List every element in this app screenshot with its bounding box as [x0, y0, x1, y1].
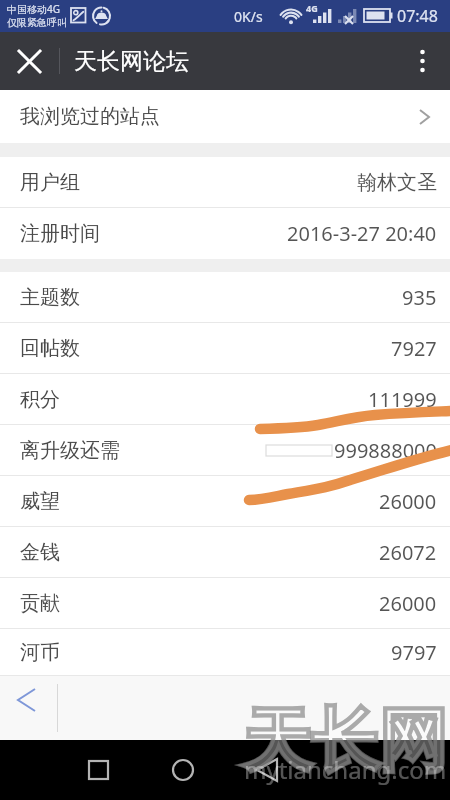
- staticText: 我浏览过的站点: [20, 104, 160, 129]
- button[interactable]: 我浏览过的站点: [0, 90, 450, 143]
- staticText: 0K/s: [234, 7, 263, 26]
- button[interactable]: Home: [153, 740, 213, 800]
- button[interactable]: 贡献: [0, 578, 450, 629]
- button[interactable]: Close: [0, 32, 59, 90]
- staticText: 翰林文圣: [357, 170, 437, 195]
- staticText: 935: [402, 284, 437, 311]
- button[interactable]: 注册时间: [0, 208, 450, 259]
- staticText: 回帖数: [20, 336, 80, 361]
- staticText: 26072: [379, 539, 437, 566]
- button[interactable]: Recents: [68, 740, 128, 800]
- staticText: 用户组: [20, 170, 80, 195]
- button[interactable]: 主题数: [0, 272, 450, 323]
- staticText: 07:48: [397, 5, 438, 27]
- staticText: mytianchang.com: [244, 753, 447, 786]
- button[interactable]: 威望: [0, 476, 450, 527]
- staticText: 主题数: [20, 285, 80, 310]
- staticText: 金钱: [20, 540, 60, 565]
- staticText: 离升级还需: [20, 438, 120, 463]
- button[interactable]: More options: [394, 32, 450, 90]
- staticText: 4G: [306, 2, 318, 14]
- button[interactable]: 用户组: [0, 157, 450, 208]
- staticText: 中国移动4G: [7, 2, 60, 16]
- button[interactable]: 离升级还需: [0, 425, 450, 476]
- staticText: 天长网: [243, 699, 447, 785]
- button[interactable]: 积分: [0, 374, 450, 425]
- button[interactable]: Back: [237, 740, 297, 800]
- button[interactable]: 河币: [0, 629, 450, 676]
- button[interactable]: 金钱: [0, 527, 450, 578]
- staticText: 河币: [20, 640, 60, 665]
- staticText: 111999: [368, 386, 437, 413]
- staticText: 2016-3-27 20:40: [287, 220, 437, 247]
- staticText: 7927: [391, 335, 437, 362]
- staticText: 注册时间: [20, 221, 100, 246]
- staticText: 999888000: [334, 437, 437, 464]
- staticText: 26000: [379, 488, 437, 515]
- staticText: 贡献: [20, 591, 60, 616]
- staticText: 积分: [20, 387, 60, 412]
- staticText: 威望: [20, 489, 60, 514]
- staticText: 9797: [391, 639, 437, 666]
- button[interactable]: Back: [0, 676, 57, 740]
- staticText: 天长网论坛: [74, 47, 189, 76]
- button[interactable]: 回帖数: [0, 323, 450, 374]
- staticText: 天长网: [243, 699, 447, 785]
- staticText: 仅限紧急呼叫: [7, 16, 67, 29]
- staticText: 26000: [379, 590, 437, 617]
